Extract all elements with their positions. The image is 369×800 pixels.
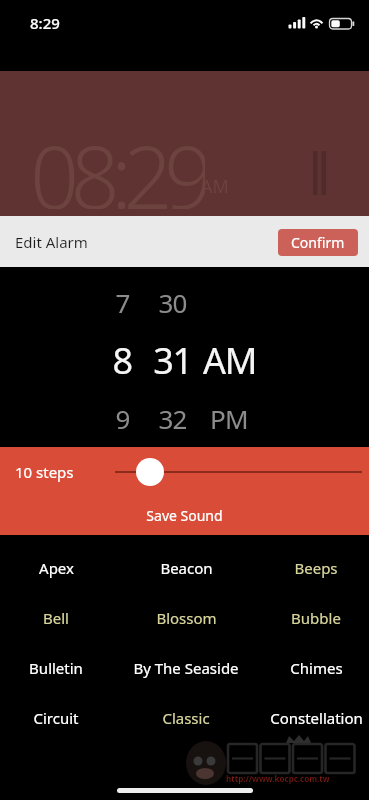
button[interactable]: Save Sound [84, 501, 284, 529]
staticText: 10 steps [15, 462, 74, 482]
staticText: Chimes [290, 658, 343, 678]
staticText: Bell [43, 608, 69, 628]
staticText: 9 [115, 401, 130, 436]
staticText: AM [203, 336, 256, 382]
staticText: 7 [115, 285, 130, 320]
staticText: http://www.kocpc.com.tw [226, 773, 330, 784]
button[interactable]: Beeps [252, 544, 369, 592]
staticText: Apex [39, 558, 74, 578]
staticText: Constellation [270, 708, 363, 728]
button[interactable] [92, 267, 152, 447]
staticText: Circuit [33, 708, 79, 728]
button[interactable]: Circuit [0, 694, 120, 742]
button[interactable]: Steps slider [110, 455, 366, 489]
staticText: 31 [153, 336, 192, 382]
button[interactable] [0, 71, 369, 216]
staticText: 30 [158, 285, 187, 320]
button[interactable]: Classic [122, 694, 250, 742]
staticText: 8 [112, 336, 132, 382]
button[interactable]: Edit Alarm [15, 228, 165, 256]
button[interactable] [142, 267, 204, 447]
button[interactable]: Bell [0, 594, 120, 642]
staticText: Bubble [291, 608, 341, 628]
button[interactable] [196, 267, 262, 447]
button[interactable]: Confirm [278, 229, 358, 256]
button[interactable]: Bulletin [0, 644, 120, 692]
button[interactable]: Constellation [252, 694, 369, 742]
staticText: Bulletin [29, 658, 83, 678]
staticText: Classic [162, 708, 210, 728]
button[interactable]: Blossom [122, 594, 250, 642]
button[interactable]: By The Seaside [122, 644, 250, 692]
button[interactable]: Pause preview [312, 150, 328, 196]
staticText: Confirm [291, 233, 345, 252]
staticText: By The Seaside [133, 658, 239, 678]
staticText: 32 [158, 401, 187, 436]
staticText: PM [210, 401, 248, 436]
button[interactable]: Chimes [252, 644, 369, 692]
button[interactable]: Bubble [252, 594, 369, 642]
staticText: Beacon [160, 558, 213, 578]
staticText: 08:29 [30, 117, 205, 209]
staticText: Save Sound [146, 506, 223, 525]
staticText: Edit Alarm [15, 232, 88, 252]
button[interactable]: Apex [0, 544, 120, 592]
staticText: AM [201, 174, 229, 198]
staticText: 8:29 [30, 13, 60, 33]
button[interactable]: Beacon [122, 544, 250, 592]
staticText: Beeps [294, 558, 338, 578]
staticText: Blossom [156, 608, 217, 628]
